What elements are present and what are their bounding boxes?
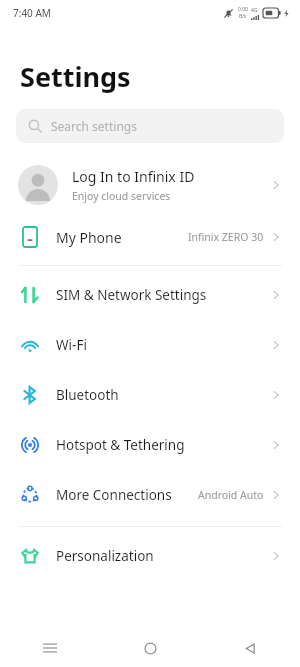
staticText: Log In to Infinix ID [72, 167, 195, 186]
staticText: Bluetooth [56, 386, 270, 404]
button[interactable]: Bluetooth [0, 370, 300, 420]
button[interactable]: SIM & Network Settings [0, 270, 300, 320]
button[interactable]: Hotspot & Tethering [0, 420, 300, 470]
staticText: Search settings [51, 118, 137, 134]
button[interactable]: Back [200, 629, 300, 667]
button[interactable]: Personalization [0, 531, 300, 581]
staticText: Wi-Fi [56, 336, 270, 354]
staticText: Hotspot & Tethering [56, 436, 270, 454]
staticText: Android Auto [198, 488, 264, 502]
staticText: 7:40 AM [13, 6, 51, 20]
staticText: My Phone [56, 228, 188, 247]
button[interactable]: Search settings [16, 109, 284, 143]
button[interactable]: More Connections [0, 470, 300, 520]
button[interactable]: My Phone [0, 215, 300, 259]
staticText: B/s [239, 13, 247, 20]
button[interactable]: Home [100, 629, 200, 667]
staticText: More Connections [56, 486, 198, 504]
staticText: 4G [251, 7, 258, 14]
staticText: Enjoy cloud services [72, 189, 171, 203]
button[interactable]: Log In to Infinix ID [0, 155, 300, 215]
staticText: 0.00 [238, 6, 248, 13]
button[interactable]: Recent apps [0, 629, 100, 667]
staticText: SIM & Network Settings [56, 286, 270, 304]
staticText: Settings [20, 58, 131, 95]
staticText: Personalization [56, 547, 270, 565]
staticText: Infinix ZERO 30 [188, 230, 264, 244]
button[interactable]: Wi-Fi [0, 320, 300, 370]
